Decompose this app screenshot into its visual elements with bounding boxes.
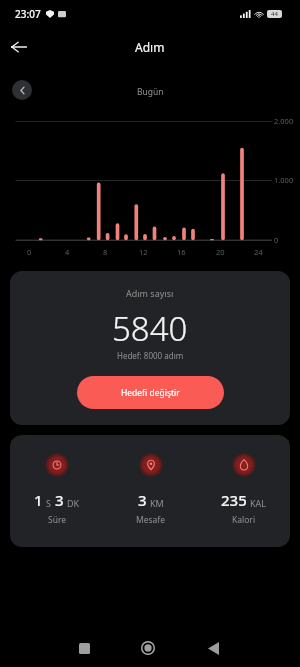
- staticText: 3: [138, 490, 147, 510]
- button[interactable]: Recent apps: [66, 630, 102, 666]
- staticText: 24: [254, 247, 263, 257]
- staticText: Mesafe: [136, 514, 166, 526]
- button[interactable]: Back: [195, 630, 231, 666]
- staticText: 3: [55, 490, 64, 510]
- staticText: 1.000: [274, 175, 294, 185]
- button[interactable]: Hedefi değiştir: [77, 376, 224, 409]
- staticText: KM: [150, 497, 164, 509]
- button[interactable]: Home: [130, 630, 166, 666]
- staticText: 4: [65, 247, 70, 257]
- staticText: 20: [216, 247, 225, 257]
- button[interactable]: Previous day: [12, 80, 32, 100]
- staticText: Hedef: 8000 adım: [117, 350, 184, 361]
- staticText: 12: [139, 247, 148, 257]
- staticText: Kalori: [232, 514, 256, 526]
- staticText: KAL: [250, 497, 267, 509]
- staticText: 2.000: [274, 116, 294, 126]
- staticText: Adım sayısı: [126, 287, 174, 299]
- staticText: 44: [271, 10, 278, 18]
- staticText: 235: [221, 490, 247, 510]
- staticText: 8: [103, 247, 108, 257]
- button[interactable]: Back: [4, 32, 34, 62]
- staticText: 5840: [112, 306, 188, 351]
- staticText: 0: [27, 247, 32, 257]
- staticText: Hedefi değiştir: [121, 387, 180, 399]
- staticText: Süre: [48, 514, 67, 526]
- staticText: Bugün: [137, 86, 164, 98]
- staticText: DK: [67, 497, 80, 509]
- staticText: Adım: [135, 39, 165, 55]
- staticText: S: [46, 497, 51, 509]
- staticText: 0: [274, 235, 279, 245]
- staticText: 1: [34, 490, 43, 510]
- staticText: 16: [177, 247, 186, 257]
- staticText: 23:07: [15, 7, 41, 21]
